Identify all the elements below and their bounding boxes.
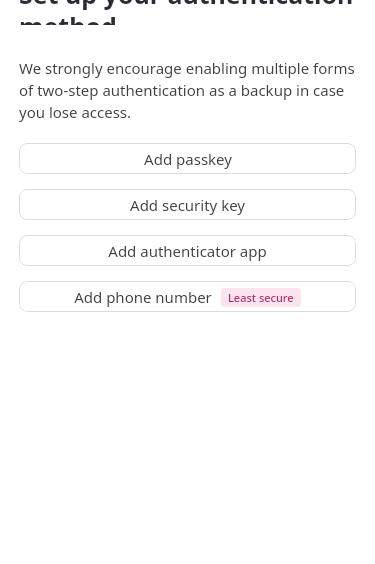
button[interactable]: Add authenticator app xyxy=(19,235,356,266)
staticText: We strongly encourage enabling multiple … xyxy=(19,58,356,123)
button[interactable]: Add security key xyxy=(19,189,356,220)
staticText: Add security key xyxy=(130,195,245,215)
staticText: Least secure xyxy=(228,290,294,305)
staticText: Add authenticator app xyxy=(108,241,267,261)
staticText: Set up your authentication method xyxy=(19,0,356,25)
button[interactable]: Add passkey xyxy=(19,143,356,174)
staticText: Add passkey xyxy=(144,149,232,169)
button[interactable]: Add phone number xyxy=(19,281,356,312)
staticText: Add phone number xyxy=(74,287,212,307)
